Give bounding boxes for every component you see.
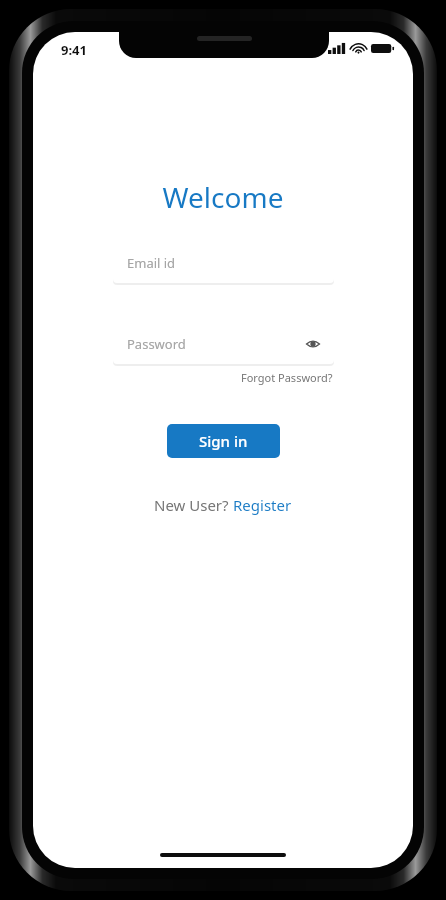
staticText: Welcome — [33, 178, 413, 216]
staticText: Password — [127, 335, 304, 353]
button[interactable]: Email id — [113, 242, 334, 283]
staticText: Email id — [127, 254, 322, 272]
button[interactable]: Register — [233, 495, 292, 515]
button[interactable]: Show password — [304, 335, 322, 353]
staticText: 9:41 — [61, 41, 87, 59]
button[interactable]: Password — [113, 323, 334, 364]
button[interactable]: Forgot Password? — [240, 369, 334, 386]
staticText: Sign in — [199, 431, 248, 451]
staticText: New User? — [154, 495, 233, 515]
button[interactable]: Sign in — [167, 424, 280, 458]
